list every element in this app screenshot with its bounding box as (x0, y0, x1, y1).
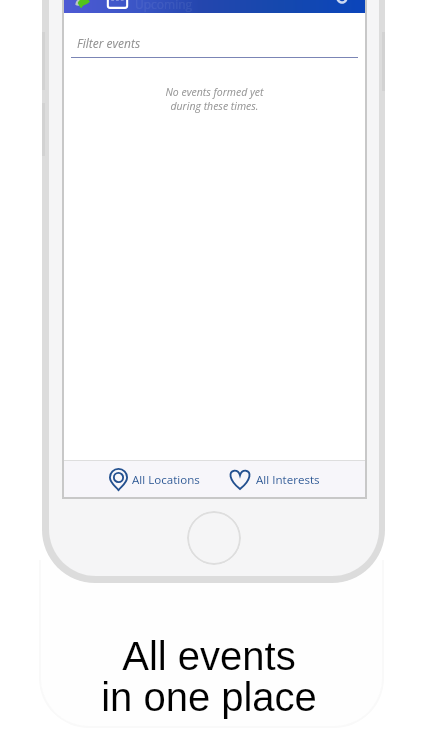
other: All Interests (228, 469, 252, 490)
staticText: All Interests (256, 472, 320, 488)
button[interactable]: All Locations (106, 465, 203, 494)
staticText: All events in one place (101, 634, 317, 720)
other: All Locations (109, 468, 128, 491)
button[interactable]: All Interests (225, 466, 323, 493)
other: Refresh (334, 0, 350, 6)
staticText: Upcoming (135, 0, 193, 12)
other: App logo (75, 0, 90, 12)
staticText: Filter events (77, 35, 141, 51)
staticText: All Locations (132, 472, 200, 488)
other: Calendar (107, 0, 128, 10)
staticText: No events formed yet during these times. (165, 85, 264, 113)
